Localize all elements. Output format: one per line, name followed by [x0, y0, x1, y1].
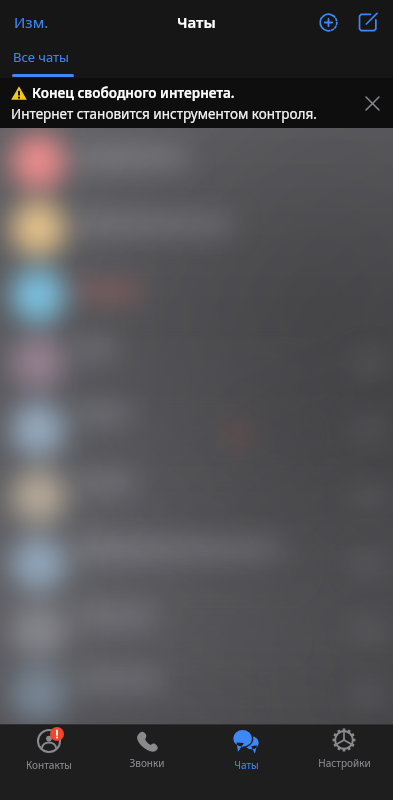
staticText: Настройки	[318, 756, 371, 770]
staticText: Контакты	[26, 758, 72, 772]
button[interactable]: Чаты	[197, 725, 295, 800]
button[interactable]: Изм.	[14, 12, 49, 32]
button[interactable]	[0, 262, 393, 329]
staticText: Чаты	[234, 758, 259, 772]
button[interactable]	[0, 463, 393, 530]
button[interactable]	[0, 530, 393, 597]
button[interactable]: Настройки	[295, 725, 393, 800]
button[interactable]	[0, 664, 393, 725]
button[interactable]: Все чаты	[13, 48, 69, 66]
button[interactable]	[0, 396, 393, 463]
button[interactable]	[0, 597, 393, 664]
button[interactable]: Compose new message	[352, 7, 382, 37]
button[interactable]: Add story	[313, 7, 343, 37]
button[interactable]	[0, 329, 393, 396]
button[interactable]: Контакты	[0, 725, 98, 800]
button[interactable]: Звонки	[98, 725, 196, 800]
staticText: Чаты	[177, 12, 216, 32]
button[interactable]: Close banner	[359, 90, 385, 116]
button[interactable]	[0, 195, 393, 262]
staticText: Интернет становится инструментом контрол…	[11, 105, 317, 123]
staticText: Конец свободного интернета.	[32, 84, 235, 102]
button[interactable]	[0, 128, 393, 195]
staticText: Звонки	[129, 756, 165, 770]
